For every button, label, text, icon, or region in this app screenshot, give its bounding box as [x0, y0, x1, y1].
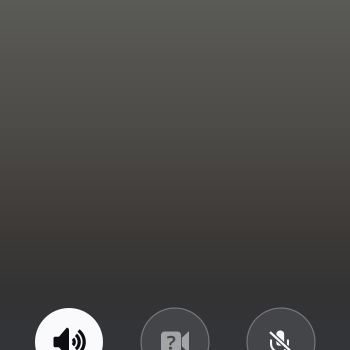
button[interactable]: Video [141, 308, 209, 350]
staticText: ? [166, 329, 175, 350]
button[interactable]: Mute [247, 308, 315, 350]
button[interactable]: Audio output [35, 308, 103, 350]
